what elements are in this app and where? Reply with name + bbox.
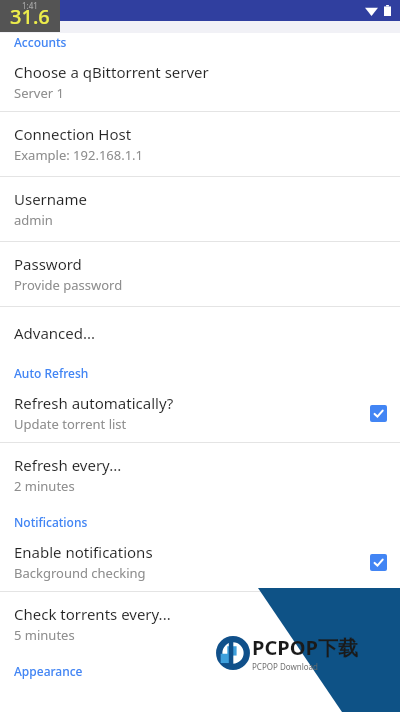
button[interactable]: Advanced... bbox=[0, 307, 400, 358]
button[interactable]: Choose a qBittorrent server bbox=[0, 53, 400, 111]
staticText: 5 minutes bbox=[14, 626, 75, 644]
staticText: Connection Host bbox=[14, 124, 132, 144]
staticText: 2 minutes bbox=[14, 477, 75, 495]
staticText: Advanced... bbox=[14, 323, 96, 343]
staticText: admin bbox=[14, 211, 53, 229]
staticText: Example: 192.168.1.1 bbox=[14, 146, 144, 164]
staticText: Auto Refresh bbox=[14, 365, 89, 381]
staticText: Check torrents every... bbox=[14, 604, 171, 624]
staticText: Enable notifications bbox=[14, 542, 153, 562]
staticText: Refresh automatically? bbox=[14, 393, 174, 413]
staticText: Update torrent list bbox=[14, 415, 127, 433]
button[interactable]: Enable notifications bbox=[0, 533, 400, 591]
staticText: PCPOP Download bbox=[252, 661, 318, 672]
staticText: Notifications bbox=[14, 514, 88, 530]
staticText: Password bbox=[14, 254, 82, 274]
button[interactable]: Check torrents every... bbox=[0, 592, 400, 656]
staticText: Choose a qBittorrent server bbox=[14, 62, 209, 82]
other: Refresh automatically? bbox=[370, 405, 387, 422]
other: Enable notifications bbox=[370, 554, 387, 571]
staticText: Username bbox=[14, 189, 87, 209]
staticText: 1:41 bbox=[22, 0, 38, 11]
button[interactable]: Refresh automatically? bbox=[0, 384, 400, 442]
staticText: Refresh every... bbox=[14, 455, 122, 475]
button[interactable]: Password bbox=[0, 242, 400, 306]
staticText: Server 1 bbox=[14, 84, 64, 102]
staticText: Background checking bbox=[14, 564, 146, 582]
staticText: Provide password bbox=[14, 276, 123, 294]
button[interactable]: Refresh every... bbox=[0, 443, 400, 507]
staticText: PCPOP下载 bbox=[252, 634, 358, 661]
staticText: Accounts bbox=[14, 34, 67, 50]
staticText: Appearance bbox=[14, 663, 83, 679]
button[interactable]: Connection Host bbox=[0, 112, 400, 176]
button[interactable]: Username bbox=[0, 177, 400, 241]
staticText: 31.6 bbox=[10, 3, 50, 30]
